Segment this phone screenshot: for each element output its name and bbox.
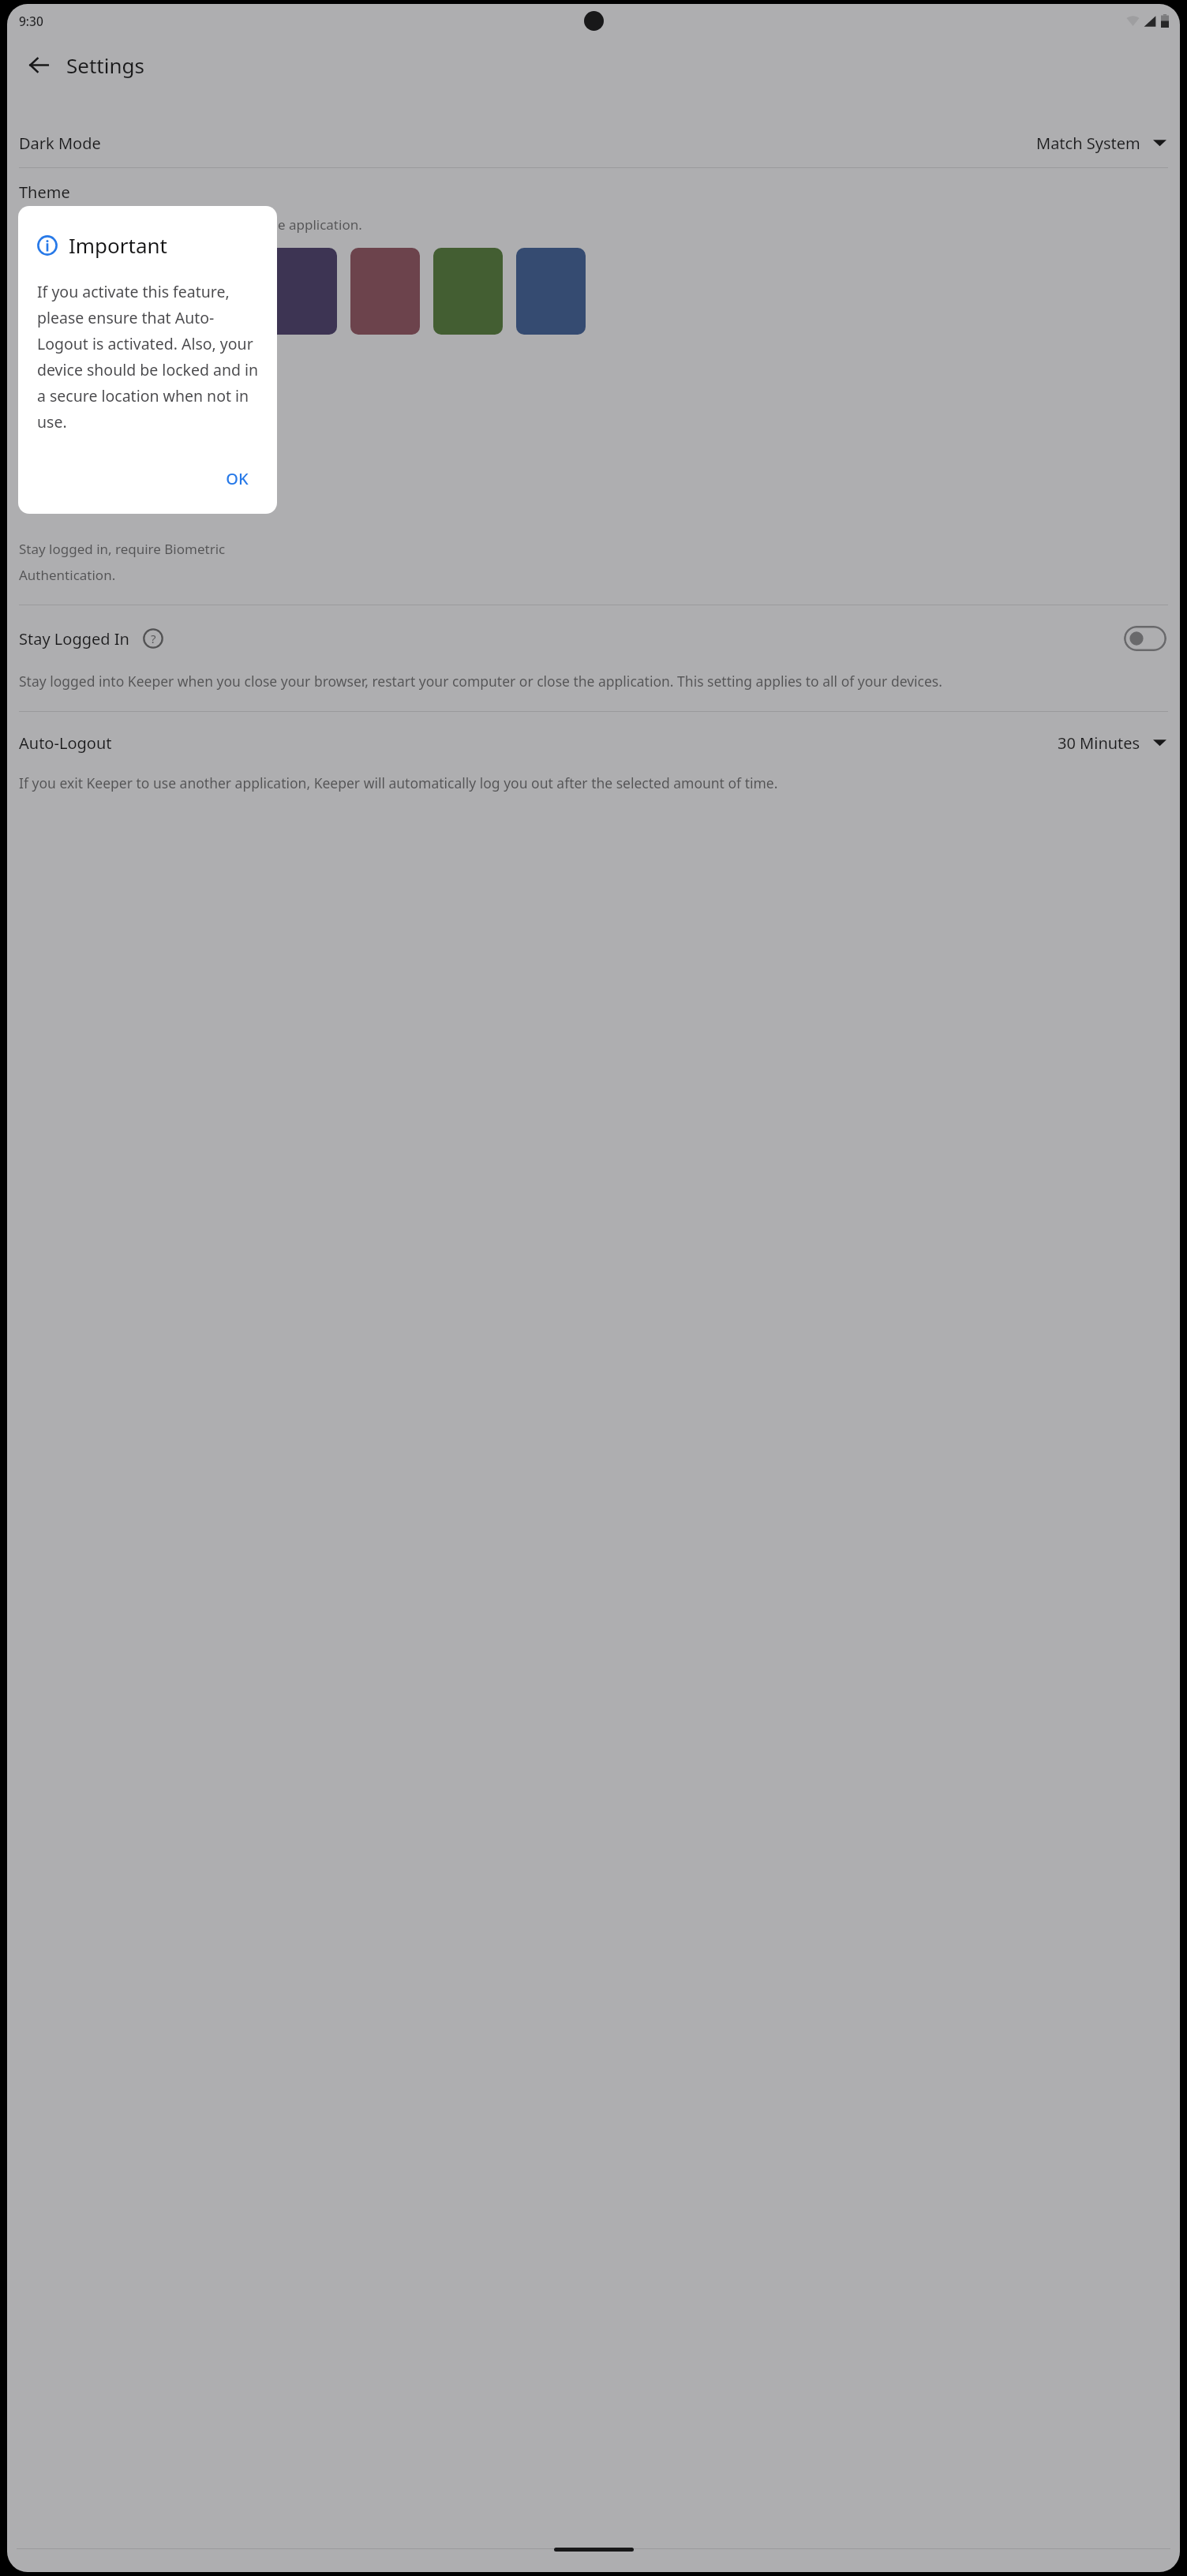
staticText: If you activate this feature, please ens… xyxy=(37,281,260,432)
staticText: 30 Minutes xyxy=(1058,732,1140,754)
button[interactable]: Theme 3 xyxy=(268,248,337,335)
button[interactable]: Theme 4 xyxy=(350,248,420,335)
button[interactable]: Help xyxy=(139,624,167,653)
button[interactable]: Theme 0 xyxy=(19,248,88,335)
staticText: Auto-Logout xyxy=(19,732,112,754)
button[interactable]: Theme 1 xyxy=(102,248,171,335)
button[interactable]: Stay Logged In toggle xyxy=(1124,626,1166,651)
staticText: Stay logged into Keeper when you close y… xyxy=(19,672,942,691)
button[interactable]: Theme 5 xyxy=(433,248,503,335)
staticText: Settings xyxy=(66,51,144,79)
button[interactable]: Back xyxy=(20,46,58,84)
staticText: ? xyxy=(151,631,156,646)
staticText: 9:30 xyxy=(19,13,43,29)
button[interactable]: Stay Logged In xyxy=(7,605,1180,672)
staticText: Match System xyxy=(1036,133,1140,154)
staticText: OK xyxy=(226,468,249,489)
button[interactable]: OK xyxy=(215,461,260,496)
button[interactable]: Theme 2 xyxy=(185,248,254,335)
button[interactable]: Dark Mode xyxy=(7,118,1180,167)
staticText: Stay Logged In xyxy=(19,628,129,650)
button[interactable]: Theme 6 xyxy=(516,248,586,335)
staticText: Dark Mode xyxy=(19,133,101,154)
staticText: Theme xyxy=(19,182,70,203)
staticText: Stay logged in, require Biometric Authen… xyxy=(19,540,226,584)
button[interactable]: Auto-Logout xyxy=(7,712,1180,773)
staticText: Choose a theme for the appearance of the… xyxy=(19,215,362,234)
staticText: Important xyxy=(69,231,168,259)
staticText: If you exit Keeper to use another applic… xyxy=(19,773,778,792)
